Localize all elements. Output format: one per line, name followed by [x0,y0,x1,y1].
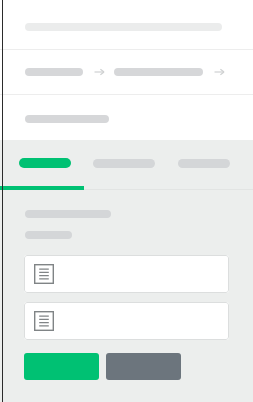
button[interactable] [25,68,83,76]
button[interactable]: Document [24,255,229,293]
other: Next [212,65,226,79]
button[interactable]: Document [24,302,229,340]
button[interactable] [178,153,230,174]
button[interactable] [0,0,253,49]
other: Document [34,311,54,331]
button[interactable]: Submit [24,353,99,380]
other: Next [92,65,106,79]
button[interactable]: Cancel [106,353,181,380]
other: Document [34,264,54,284]
button[interactable] [114,68,203,76]
button[interactable] [93,153,155,174]
button[interactable] [19,152,71,174]
